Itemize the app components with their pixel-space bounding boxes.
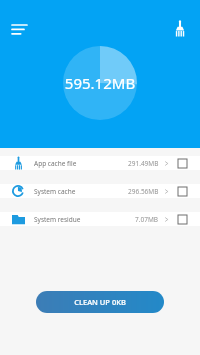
button[interactable]: System cache <box>0 184 200 198</box>
button[interactable]: App cache file <box>0 156 200 170</box>
staticText: 7.07MB <box>135 215 159 224</box>
staticText: System residue <box>34 215 81 224</box>
staticText: System cache <box>34 187 76 196</box>
button[interactable]: Clean now <box>167 16 193 42</box>
button[interactable]: System residue <box>0 212 200 226</box>
button[interactable]: Select System residue <box>175 212 189 226</box>
button[interactable]: Menu <box>6 16 32 42</box>
button[interactable]: Select System cache <box>175 184 189 198</box>
staticText: 595.12MB <box>0 73 200 93</box>
staticText: CLEAN UP 0KB <box>74 297 126 307</box>
staticText: 296.56MB <box>128 187 159 196</box>
staticText: 291.49MB <box>128 159 159 168</box>
button[interactable]: Select App cache file <box>175 156 189 170</box>
button[interactable]: CLEAN UP 0KB <box>36 291 164 313</box>
staticText: App cache file <box>34 159 77 168</box>
